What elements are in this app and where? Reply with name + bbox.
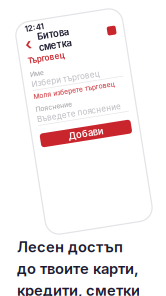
button[interactable]: Добави xyxy=(38,127,130,141)
staticText: Моля изберете търговец xyxy=(38,85,120,93)
staticText: до твоите карти, xyxy=(17,260,139,277)
staticText: Лесен достъп xyxy=(17,238,123,256)
staticText: 12:41 xyxy=(40,16,59,26)
staticText: Име xyxy=(38,63,52,71)
staticText: Избери търговец xyxy=(38,72,107,81)
staticText: Пояснение xyxy=(38,98,75,106)
staticText: кредити, сметки xyxy=(17,281,140,296)
staticText: Въведете пояснение xyxy=(38,107,123,117)
staticText: Битова сметка xyxy=(51,25,84,47)
staticText: ‹ xyxy=(38,26,45,46)
staticText: Търговец xyxy=(38,48,75,58)
staticText: Добави xyxy=(66,128,102,139)
